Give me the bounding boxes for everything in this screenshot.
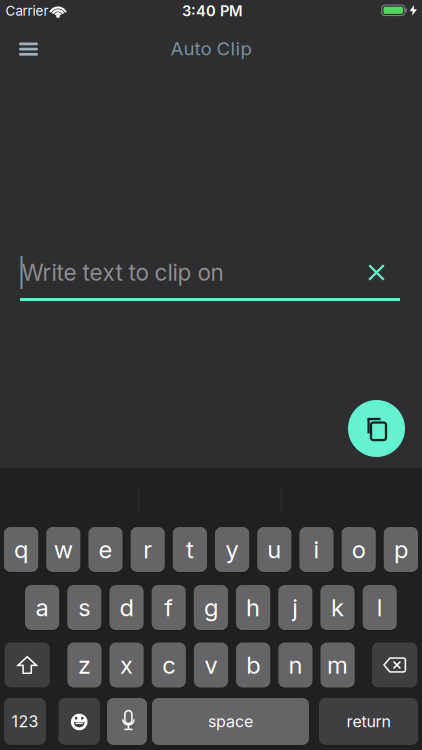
- button[interactable]: k: [320, 585, 355, 630]
- button[interactable]: Emoji: [58, 698, 100, 745]
- button[interactable]: m: [320, 642, 355, 687]
- staticText: 123: [11, 712, 38, 731]
- staticText: Auto Clip: [170, 37, 251, 59]
- staticText: h: [246, 593, 260, 622]
- staticText: s: [78, 593, 90, 622]
- staticText: b: [246, 651, 260, 679]
- staticText: w: [54, 535, 73, 564]
- staticText: m: [327, 651, 348, 679]
- button[interactable]: i: [299, 527, 334, 572]
- button[interactable]: 123: [4, 698, 46, 745]
- button[interactable]: l: [363, 585, 397, 630]
- staticText: k: [331, 593, 344, 622]
- button[interactable]: f: [152, 585, 186, 630]
- staticText: l: [377, 593, 383, 622]
- button[interactable]: Shift: [4, 642, 50, 687]
- button[interactable]: q: [4, 527, 38, 572]
- staticText: a: [36, 593, 49, 622]
- button[interactable]: x: [109, 642, 144, 687]
- staticText: e: [98, 535, 112, 564]
- button[interactable]: d: [109, 585, 144, 630]
- button[interactable]: w: [46, 527, 80, 572]
- button[interactable]: g: [194, 585, 228, 630]
- staticText: d: [119, 593, 133, 622]
- button[interactable]: h: [236, 585, 270, 630]
- button[interactable]: Copy: [348, 400, 405, 457]
- staticText: p: [394, 535, 408, 564]
- staticText: space: [208, 712, 253, 731]
- button[interactable]: b: [236, 642, 270, 687]
- button[interactable]: o: [342, 527, 376, 572]
- button[interactable]: p: [384, 527, 418, 572]
- button[interactable]: z: [67, 642, 101, 687]
- staticText: j: [292, 593, 298, 622]
- staticText: g: [204, 593, 218, 622]
- button[interactable]: r: [131, 527, 165, 572]
- staticText: z: [78, 651, 91, 679]
- button[interactable]: e: [88, 527, 123, 572]
- button[interactable]: space: [152, 698, 309, 745]
- button[interactable]: Dictate: [107, 698, 147, 745]
- staticText: t: [186, 535, 194, 564]
- button[interactable]: Delete: [372, 642, 417, 687]
- staticText: Write text to clip on: [21, 259, 223, 286]
- button[interactable]: a: [25, 585, 59, 630]
- button[interactable]: return: [319, 698, 418, 745]
- staticText: u: [267, 535, 281, 564]
- button[interactable]: c: [152, 642, 186, 687]
- staticText: q: [14, 535, 28, 564]
- staticText: 3:40 PM: [182, 2, 243, 20]
- staticText: return: [346, 712, 390, 731]
- button[interactable]: j: [278, 585, 312, 630]
- button[interactable]: Clear text: [361, 257, 392, 288]
- button[interactable]: Menu: [14, 37, 43, 61]
- staticText: Carrier: [5, 3, 48, 19]
- button[interactable]: t: [173, 527, 207, 572]
- staticText: c: [162, 651, 175, 679]
- staticText: n: [288, 651, 302, 679]
- staticText: v: [204, 651, 217, 679]
- staticText: y: [226, 535, 239, 564]
- button[interactable]: v: [194, 642, 228, 687]
- staticText: x: [120, 651, 133, 679]
- button[interactable]: n: [278, 642, 312, 687]
- staticText: f: [164, 593, 173, 622]
- button[interactable]: s: [67, 585, 101, 630]
- staticText: i: [313, 535, 319, 564]
- button[interactable]: y: [215, 527, 249, 572]
- staticText: r: [143, 535, 152, 564]
- staticText: o: [352, 535, 366, 564]
- button[interactable]: u: [257, 527, 291, 572]
